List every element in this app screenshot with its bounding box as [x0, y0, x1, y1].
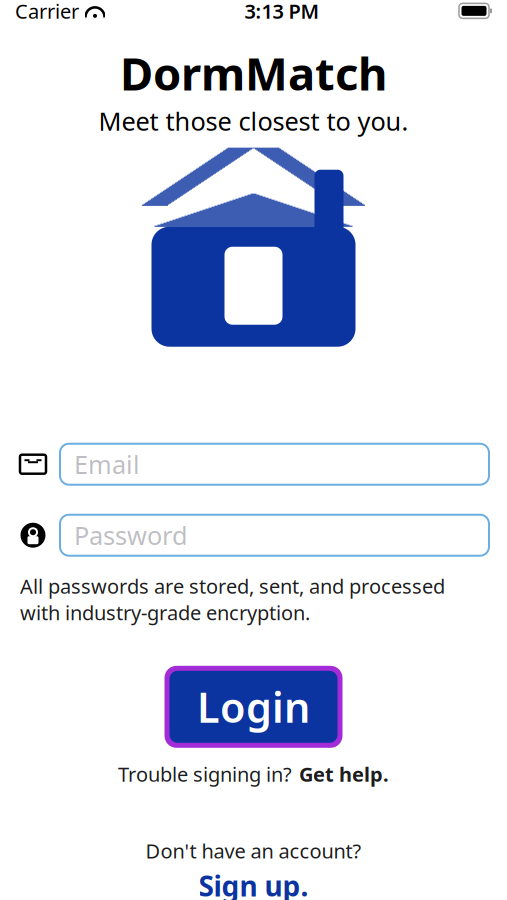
staticText: Trouble signing in?: [118, 761, 292, 787]
button[interactable]: Email: [60, 444, 489, 485]
staticText: 3:13 PM: [244, 0, 319, 24]
staticText: Carrier: [15, 0, 79, 24]
button[interactable]: Sign up.: [198, 867, 308, 900]
staticText: Meet those closest to you.: [98, 104, 408, 138]
staticText: Login: [197, 679, 310, 734]
staticText: Email: [74, 447, 140, 481]
staticText: All passwords are stored, sent, and proc…: [20, 573, 445, 626]
staticText: Sign up.: [198, 867, 308, 900]
staticText: Don't have an account?: [145, 837, 361, 864]
button[interactable]: Get help.: [299, 761, 389, 787]
staticText: Password: [74, 518, 188, 552]
button[interactable]: Login: [164, 666, 342, 748]
staticText: Get help.: [299, 761, 389, 787]
button[interactable]: Password: [60, 515, 489, 556]
staticText: DormMatch: [120, 43, 387, 103]
